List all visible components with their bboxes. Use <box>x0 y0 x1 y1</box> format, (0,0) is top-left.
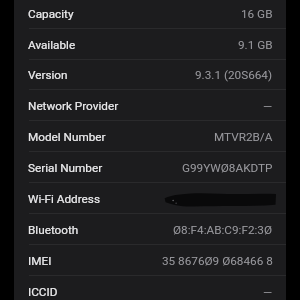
staticText: — <box>263 285 273 299</box>
button[interactable]: Version <box>14 59 286 90</box>
button[interactable]: Wi-Fi Address <box>14 183 286 214</box>
staticText: 35 8676Ø9 Ø68466 8 <box>162 254 273 268</box>
button[interactable]: Network Provider <box>14 90 286 121</box>
other: Redacted Wi-Fi address <box>14 183 286 214</box>
staticText: IMEI <box>28 254 52 268</box>
staticText: 16 GB <box>241 7 273 21</box>
staticText: Wi-Fi Address <box>28 192 100 206</box>
button[interactable]: Serial Number <box>14 152 286 183</box>
button[interactable]: Bluetooth <box>14 214 286 245</box>
staticText: Version <box>28 68 68 82</box>
staticText: Bluetooth <box>28 223 79 237</box>
staticText: — <box>263 99 273 113</box>
staticText: G99YWØ8AKDTP <box>182 161 273 175</box>
staticText: Network Provider <box>28 99 119 113</box>
staticText: Model Number <box>28 130 106 144</box>
staticText: Available <box>28 38 76 52</box>
staticText: MTVR2B/A <box>214 130 273 144</box>
staticText: 9.3.1 (20S664) <box>195 68 273 82</box>
staticText: Serial Number <box>28 161 103 175</box>
button[interactable]: Model Number <box>14 121 286 152</box>
staticText: Ø8:F4:AB:C9:F2:3Ø <box>173 223 273 237</box>
staticText: ICCID <box>28 285 58 299</box>
button[interactable]: Capacity <box>14 0 286 29</box>
staticText: Capacity <box>28 7 74 21</box>
button[interactable]: ICCID <box>14 276 286 300</box>
button[interactable]: IMEI <box>14 245 286 276</box>
button[interactable]: Available <box>14 29 286 60</box>
staticText: 9.1 GB <box>238 38 273 52</box>
